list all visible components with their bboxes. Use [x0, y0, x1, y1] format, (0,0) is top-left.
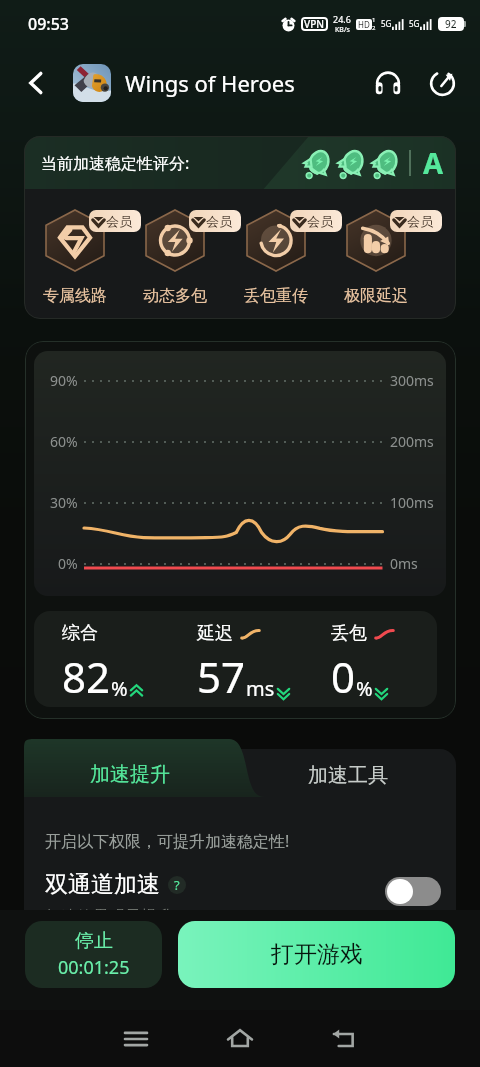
button[interactable]: 综合: [34, 611, 169, 707]
button[interactable]: Back: [16, 63, 56, 103]
staticText: 200ms: [390, 432, 434, 451]
staticText: ms: [246, 675, 275, 702]
staticText: 300ms: [390, 371, 434, 390]
staticText: 5G: [409, 18, 420, 29]
staticText: 5G: [381, 18, 392, 29]
staticText: 综合: [62, 622, 98, 645]
staticText: %: [111, 675, 128, 702]
staticText: 加速效果明显提升: [45, 907, 173, 927]
staticText: 24.6: [333, 13, 351, 25]
staticText: 开启以下权限，可提升加速稳定性!: [45, 830, 290, 852]
button[interactable]: [73, 64, 111, 102]
staticText: VPN: [304, 17, 325, 31]
staticText: 92: [445, 17, 457, 31]
staticText: 丢包: [331, 622, 367, 645]
staticText: 打开游戏: [271, 940, 363, 969]
staticText: 会员: [106, 213, 132, 229]
staticText: ?: [174, 876, 180, 894]
staticText: 丢包重传: [244, 286, 308, 306]
staticText: 2: [372, 24, 376, 32]
staticText: A: [423, 143, 444, 182]
button[interactable]: 丢包: [303, 611, 437, 707]
staticText: 专属线路: [43, 286, 107, 306]
button[interactable]: 会员: [125, 189, 225, 306]
staticText: %: [356, 675, 373, 702]
staticText: 0ms: [390, 554, 418, 573]
button[interactable]: Toggle dual channel acceleration: [385, 877, 441, 906]
button[interactable]: 加速工具: [240, 749, 456, 797]
button[interactable]: 当前加速稳定性评分:: [24, 136, 456, 189]
button[interactable]: 会员: [326, 189, 426, 306]
button[interactable]: Refresh: [422, 63, 462, 103]
staticText: 会员: [206, 213, 232, 229]
staticText: 100ms: [390, 493, 434, 512]
staticText: 90%: [50, 371, 78, 390]
staticText: 会员: [407, 213, 433, 229]
staticText: 00:01:25: [58, 955, 130, 980]
staticText: 极限延迟: [344, 286, 408, 306]
staticText: 60%: [50, 432, 78, 451]
button[interactable]: 会员: [226, 189, 326, 306]
staticText: 当前加速稳定性评分:: [41, 152, 190, 174]
staticText: 延迟: [197, 622, 233, 645]
staticText: 1: [372, 16, 376, 24]
button[interactable]: 延迟: [169, 611, 303, 707]
staticText: 30%: [50, 493, 78, 512]
button[interactable]: Home: [188, 1010, 292, 1067]
staticText: HD: [358, 19, 370, 30]
button[interactable]: Customer support: [368, 63, 408, 103]
button[interactable]: Recent apps: [84, 1010, 188, 1067]
staticText: 双通道加速: [45, 870, 160, 899]
button[interactable]: 打开游戏: [178, 921, 455, 988]
staticText: 会员: [307, 213, 333, 229]
button[interactable]: 加速提升: [24, 739, 264, 797]
button[interactable]: 会员: [25, 189, 125, 306]
staticText: 57: [197, 648, 246, 705]
button[interactable]: 停止: [25, 921, 162, 988]
staticText: 0: [331, 648, 356, 705]
staticText: 加速提升: [90, 762, 170, 787]
staticText: 停止: [75, 929, 113, 953]
staticText: Wings of Heroes: [125, 68, 295, 98]
staticText: 09:53: [28, 13, 69, 35]
button[interactable]: Back: [292, 1010, 396, 1067]
staticText: 动态多包: [143, 286, 207, 306]
staticText: 0%: [58, 554, 78, 573]
staticText: 加速工具: [308, 763, 388, 788]
staticText: KB/s: [335, 25, 350, 35]
staticText: 82: [62, 648, 111, 705]
